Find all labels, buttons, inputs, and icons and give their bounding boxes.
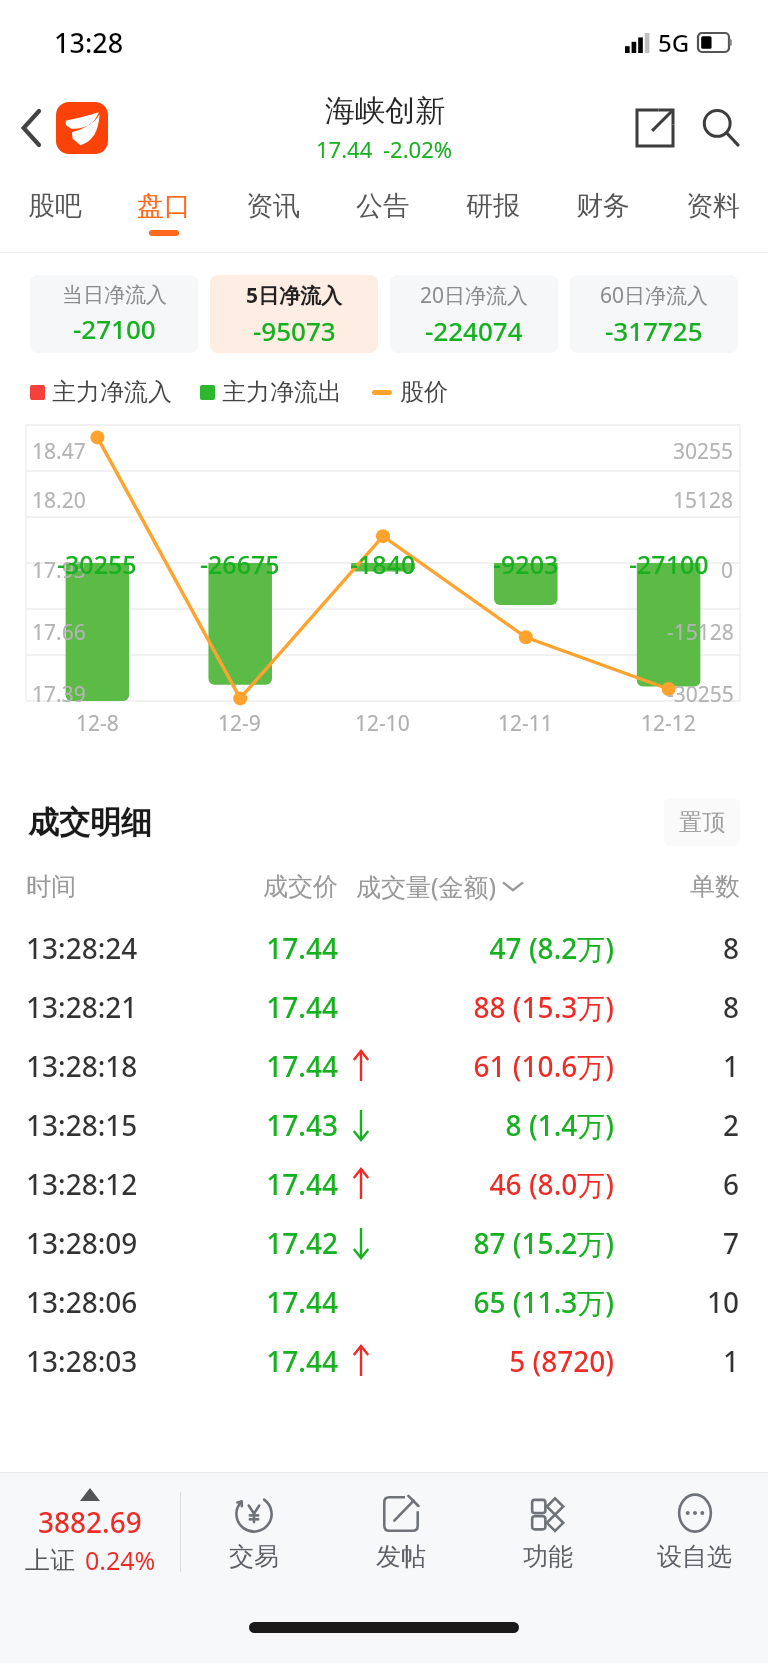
staticText: 12-11 xyxy=(498,709,553,738)
staticText: -30255 xyxy=(667,680,734,709)
staticText: 研报 xyxy=(466,189,520,223)
staticText: 成交价 xyxy=(226,871,338,902)
button[interactable]: 13:28:03 xyxy=(26,1331,740,1390)
staticText: 1 xyxy=(723,1342,740,1380)
staticText: 17.44 xyxy=(226,929,338,967)
staticText: 17.42 xyxy=(226,1224,338,1262)
staticText: 12-9 xyxy=(218,709,261,738)
button[interactable]: 20日净流入 xyxy=(390,275,558,353)
staticText: 87 (15.2万) xyxy=(384,1224,614,1262)
staticText: 6 xyxy=(723,1165,740,1203)
staticText: 13:28:15 xyxy=(26,1106,226,1144)
staticText: 10 xyxy=(707,1283,740,1321)
staticText: 18.20 xyxy=(32,486,86,515)
staticText: 5G xyxy=(658,26,690,59)
staticText: -224074 xyxy=(425,313,523,348)
button[interactable]: 股吧 xyxy=(0,172,109,252)
button[interactable]: Back xyxy=(6,102,58,154)
staticText: 主力净流出 xyxy=(222,377,342,407)
staticText: -27100 xyxy=(629,547,709,581)
button[interactable]: 13:28:12 xyxy=(26,1154,740,1213)
staticText: 61 (10.6万) xyxy=(384,1047,614,1085)
staticText: 13:28:03 xyxy=(26,1342,226,1380)
staticText: 单数 xyxy=(690,871,740,902)
staticText: 资讯 xyxy=(246,189,300,223)
staticText: 17.39 xyxy=(32,680,86,709)
staticText: 主力净流入 xyxy=(52,377,172,407)
button[interactable]: 盘口 xyxy=(109,172,218,252)
staticText: 17.44 xyxy=(226,1047,338,1085)
button[interactable]: 研报 xyxy=(438,172,548,252)
staticText: 成交明细 xyxy=(28,803,152,842)
button[interactable]: 公告 xyxy=(328,172,438,252)
staticText: 15128 xyxy=(673,486,734,515)
staticText: 3882.69 xyxy=(38,1503,142,1541)
staticText: 2 xyxy=(723,1106,740,1144)
staticText: 17.44 xyxy=(226,1283,338,1321)
staticText: 17.44 xyxy=(226,1342,338,1380)
staticText: 成交量(金额) xyxy=(356,869,497,903)
button[interactable]: 60日净流入 xyxy=(570,275,738,353)
button[interactable]: 财务 xyxy=(548,172,658,252)
staticText: 12-10 xyxy=(355,709,410,738)
staticText: 设自选 xyxy=(657,1541,732,1572)
staticText: 20日净流入 xyxy=(420,281,529,310)
staticText: 置顶 xyxy=(679,808,725,837)
button[interactable]: 13:28:24 xyxy=(26,918,740,977)
button[interactable]: 资讯 xyxy=(218,172,328,252)
staticText: -30255 xyxy=(57,547,137,581)
staticText: 17.43 xyxy=(226,1106,338,1144)
staticText: -15128 xyxy=(667,618,734,647)
staticText: 0 xyxy=(721,556,734,585)
staticText: 17.44 xyxy=(226,988,338,1026)
staticText: 5日净流入 xyxy=(246,281,343,310)
staticText: 17.44 xyxy=(316,134,373,164)
staticText: -9203 xyxy=(493,547,559,581)
button[interactable]: 置顶 xyxy=(664,798,740,846)
button[interactable]: 设自选 xyxy=(621,1473,768,1591)
staticText: 海峡创新 xyxy=(325,92,445,130)
button[interactable]: 13:28:09 xyxy=(26,1213,740,1272)
staticText: 5 (8720) xyxy=(384,1342,614,1380)
button[interactable]: 交易 xyxy=(181,1473,327,1591)
staticText: 18.47 xyxy=(32,437,86,466)
staticText: 46 (8.0万) xyxy=(384,1165,614,1203)
staticText: 13:28:24 xyxy=(26,929,226,967)
button[interactable]: 当日净流入 xyxy=(30,275,198,353)
staticText: -2.02% xyxy=(383,134,453,164)
staticText: 上证 xyxy=(25,1545,75,1576)
staticText: 股价 xyxy=(400,377,448,407)
button[interactable]: 13:28:18 xyxy=(26,1036,740,1095)
staticText: 股吧 xyxy=(28,189,82,223)
button[interactable]: 5日净流入 xyxy=(210,275,378,353)
staticText: 发帖 xyxy=(376,1541,426,1572)
staticText: 47 (8.2万) xyxy=(384,929,614,967)
staticText: 公告 xyxy=(356,189,410,223)
staticText: 8 xyxy=(723,929,740,967)
button[interactable]: 13:28:21 xyxy=(26,977,740,1036)
staticText: -1840 xyxy=(350,547,416,581)
staticText: -317725 xyxy=(605,313,703,348)
staticText: 13:28:18 xyxy=(26,1047,226,1085)
button[interactable]: 13:28:06 xyxy=(26,1272,740,1331)
staticText: 交易 xyxy=(229,1541,279,1572)
staticText: 17.66 xyxy=(32,618,86,647)
button[interactable]: 资料 xyxy=(658,172,768,252)
staticText: 8 xyxy=(723,988,740,1026)
button[interactable]: 3882.69 xyxy=(0,1473,180,1591)
button[interactable]: App logo xyxy=(56,102,108,154)
button[interactable]: 功能 xyxy=(474,1473,621,1591)
staticText: 13:28:12 xyxy=(26,1165,226,1203)
staticText: 功能 xyxy=(523,1541,573,1572)
button[interactable]: 13:28:15 xyxy=(26,1095,740,1154)
staticText: 财务 xyxy=(576,189,630,223)
button[interactable]: Share xyxy=(626,99,684,157)
staticText: 时间 xyxy=(26,871,226,902)
staticText: 13:28:21 xyxy=(26,988,226,1026)
staticText: 盘口 xyxy=(137,189,191,223)
button[interactable]: 发帖 xyxy=(327,1473,474,1591)
button[interactable]: Search xyxy=(692,99,750,157)
staticText: -27100 xyxy=(73,311,156,346)
staticText: 1 xyxy=(723,1047,740,1085)
staticText: 30255 xyxy=(673,437,734,466)
